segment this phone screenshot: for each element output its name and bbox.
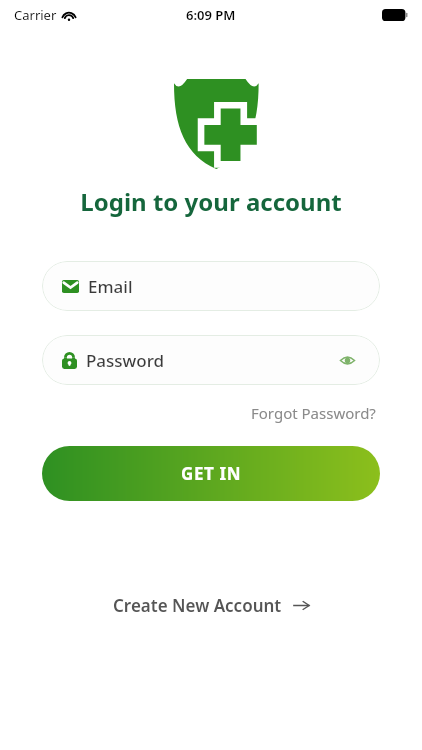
staticText: Password bbox=[86, 349, 334, 372]
button[interactable]: Email bbox=[42, 261, 380, 311]
staticText: Login to your account bbox=[0, 185, 422, 218]
button[interactable]: Forgot Password? bbox=[247, 399, 380, 427]
staticText: Email bbox=[88, 275, 360, 298]
staticText: Carrier bbox=[14, 6, 57, 24]
staticText: Create New Account bbox=[113, 594, 282, 617]
button[interactable]: Create New Account bbox=[103, 586, 320, 625]
button[interactable]: GET IN bbox=[42, 446, 380, 501]
staticText: 6:09 PM bbox=[186, 6, 236, 24]
button[interactable]: Show password bbox=[334, 347, 360, 373]
staticText: Forgot Password? bbox=[251, 403, 376, 423]
staticText: GET IN bbox=[181, 462, 242, 485]
button[interactable]: Password bbox=[42, 335, 380, 385]
